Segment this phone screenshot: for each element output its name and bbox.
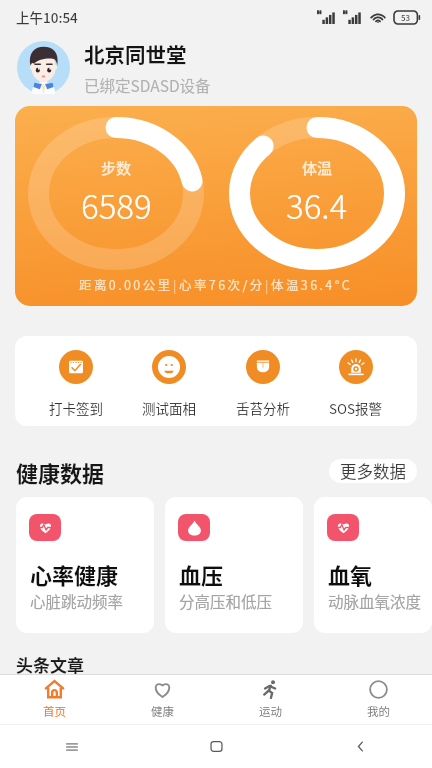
staticText: 健康数据: [16, 456, 105, 486]
staticText: 53: [401, 12, 411, 24]
button[interactable]: 心率健康: [16, 497, 154, 633]
button[interactable]: 打卡签到: [47, 350, 105, 418]
button[interactable]: Recent apps: [0, 725, 144, 768]
button[interactable]: 步数: [15, 106, 417, 306]
staticText: 健康: [151, 703, 174, 720]
staticText: 心脏跳动频率: [30, 590, 124, 612]
button[interactable]: 我的: [324, 679, 432, 720]
staticText: SOS报警: [329, 398, 383, 418]
staticText: |: [265, 275, 271, 293]
staticText: 6589: [81, 181, 152, 229]
staticText: 距离0.00公里: [79, 275, 173, 293]
staticText: 更多数据: [340, 459, 406, 483]
staticText: 36.4: [286, 181, 348, 229]
staticText: 心率健康: [30, 558, 119, 590]
button[interactable]: SOS报警: [327, 350, 385, 418]
staticText: 首页: [43, 703, 66, 720]
button[interactable]: 运动: [216, 679, 324, 720]
staticText: 上午10:54: [16, 7, 78, 27]
staticText: 步数: [101, 157, 132, 179]
staticText: |: [173, 275, 179, 293]
staticText: 血氧: [328, 558, 373, 590]
staticText: 体温36.4°C: [271, 275, 353, 293]
staticText: 心率76次/分: [179, 275, 265, 293]
staticText: 打卡签到: [49, 398, 103, 418]
staticText: 运动: [259, 703, 282, 720]
button[interactable]: 舌苔分析: [234, 350, 292, 418]
button[interactable]: Home: [144, 725, 288, 768]
button[interactable]: 首页: [0, 679, 108, 720]
button[interactable]: 血氧: [314, 497, 432, 633]
staticText: 分高压和低压: [179, 590, 273, 612]
staticText: 血压: [179, 558, 224, 590]
staticText: 北京同世堂: [84, 39, 187, 69]
staticText: 体温: [302, 157, 333, 179]
staticText: 我的: [367, 703, 390, 720]
staticText: 动脉血氧浓度: [328, 590, 422, 612]
button[interactable]: 健康: [108, 679, 216, 720]
button[interactable]: 更多数据: [329, 459, 417, 483]
button[interactable]: Back: [288, 725, 432, 768]
button[interactable]: 血压: [165, 497, 303, 633]
staticText: 头条文章: [16, 652, 84, 677]
button[interactable]: 测试面相: [140, 350, 198, 418]
staticText: 已绑定SDASD设备: [84, 74, 211, 96]
staticText: 舌苔分析: [236, 398, 290, 418]
staticText: 测试面相: [142, 398, 196, 418]
